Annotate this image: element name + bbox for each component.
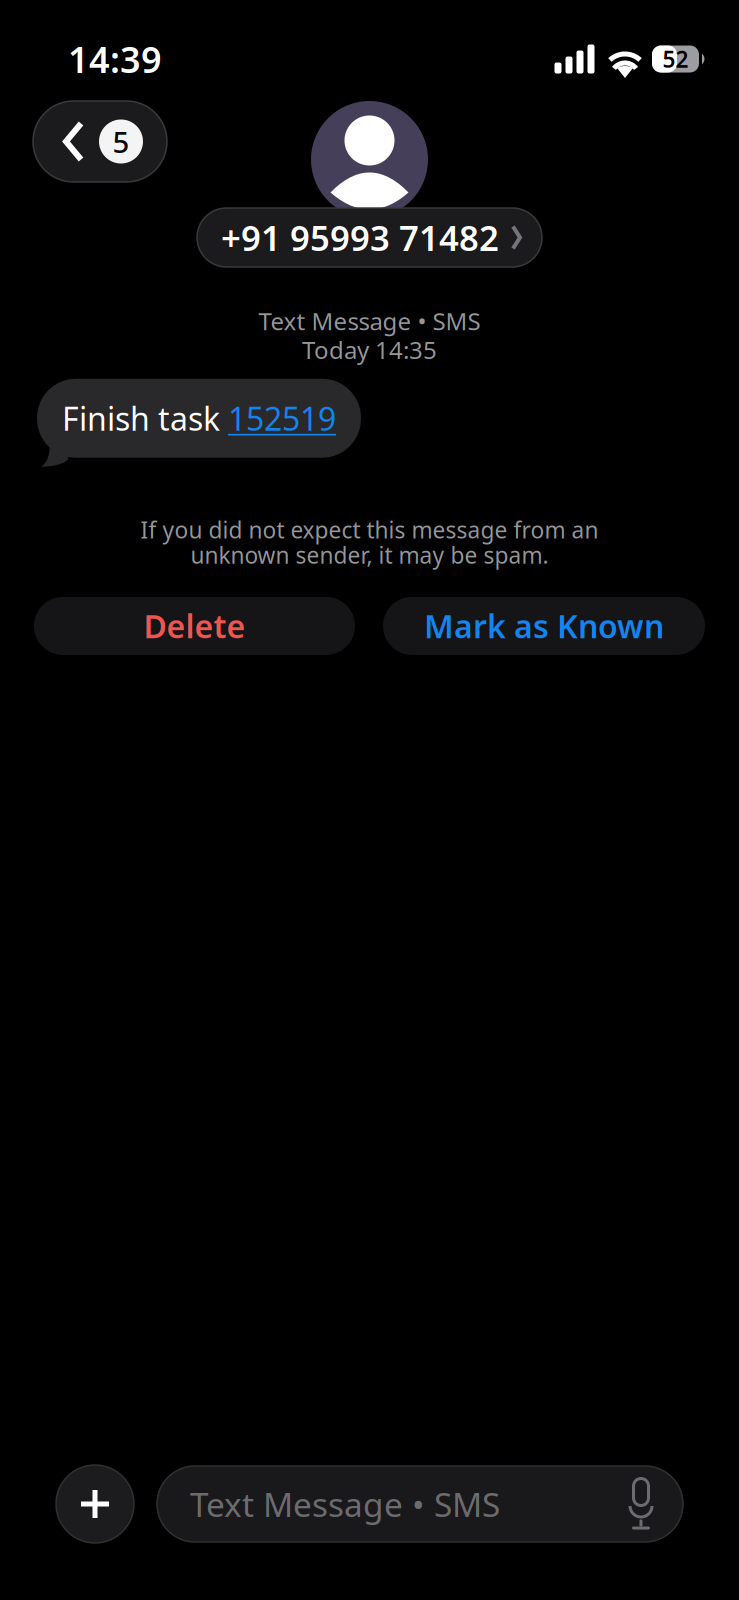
staticText: Today 14:35: [302, 334, 437, 366]
staticText: Text Message • SMS: [258, 305, 480, 337]
staticText: Finish task: [62, 397, 228, 439]
staticText: If you did not expect this message from …: [140, 515, 598, 545]
button[interactable]: Back, 5 unread: [33, 101, 167, 182]
staticText: Delete: [143, 605, 245, 647]
button[interactable]: Delete: [34, 597, 355, 655]
button[interactable]: Add attachment: [56, 1465, 134, 1543]
staticText: Text Message • SMS: [190, 1482, 500, 1526]
button[interactable]: +91 95993 71482: [197, 208, 542, 267]
staticText: 152519: [228, 397, 336, 439]
staticText: 14:39: [68, 35, 162, 83]
staticText: Mark as Known: [424, 605, 664, 647]
staticText: 5: [112, 122, 129, 161]
button[interactable]: Mark as Known: [383, 597, 705, 655]
staticText: +91 95993 71482: [221, 214, 499, 260]
staticText: 52: [662, 44, 688, 74]
staticText: unknown sender, it may be spam.: [190, 540, 548, 570]
